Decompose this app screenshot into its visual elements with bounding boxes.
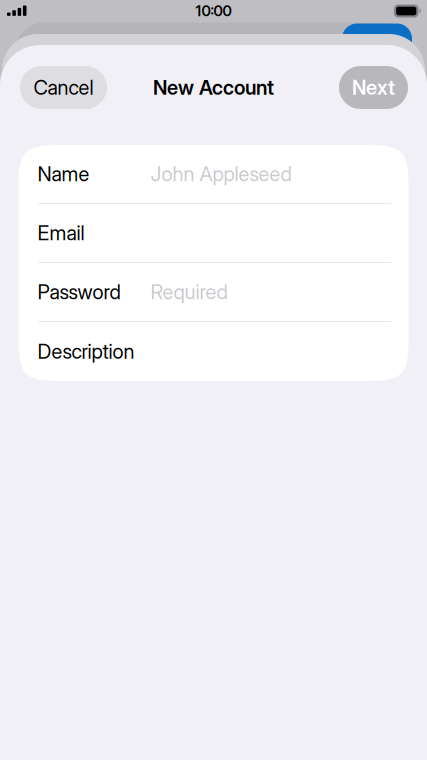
button[interactable]: Cancel [20, 66, 107, 109]
staticText: Name [37, 162, 89, 185]
staticText: 10:00 [195, 3, 231, 19]
staticText: New Account [153, 76, 274, 99]
staticText: Required [150, 280, 227, 303]
staticText: Password [37, 280, 120, 303]
staticText: Next [352, 76, 395, 99]
button[interactable]: Password [18, 263, 408, 322]
staticText: Email [37, 221, 84, 244]
button[interactable]: Description [18, 322, 408, 381]
button[interactable]: Email [18, 204, 408, 263]
staticText: Description [37, 340, 134, 363]
staticText: John Appleseed [150, 162, 291, 185]
button[interactable]: Name [18, 145, 408, 204]
staticText: Cancel [33, 76, 93, 99]
button[interactable]: Next [339, 66, 408, 109]
